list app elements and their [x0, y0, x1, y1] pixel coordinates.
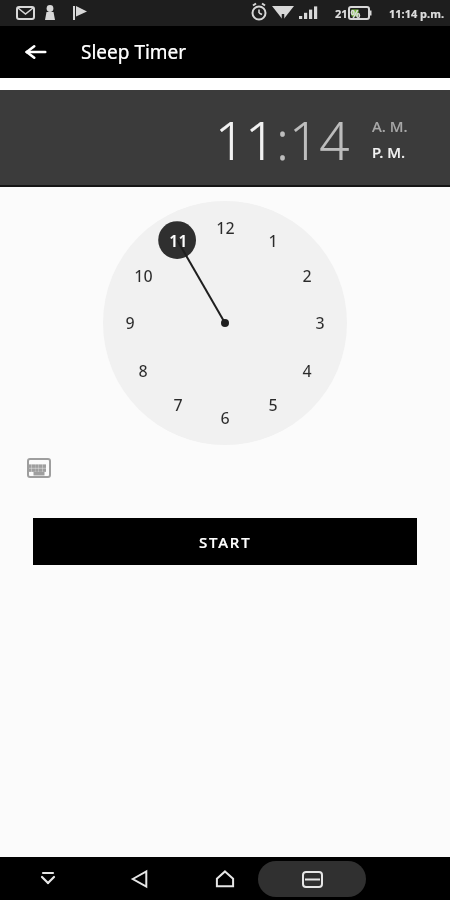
staticText: 1 [268, 230, 278, 252]
staticText: 3 [315, 312, 325, 334]
staticText: 10 [134, 265, 153, 287]
staticText: 21 % [335, 6, 361, 21]
staticText: 9 [125, 312, 135, 334]
button[interactable]: START [33, 518, 417, 565]
staticText: 5 [268, 394, 278, 416]
button[interactable]: A. M. [372, 113, 408, 139]
button[interactable]: 11 [215, 103, 276, 175]
staticText: 6 [220, 407, 230, 429]
staticText: 4 [302, 360, 312, 382]
staticText: 11 [215, 103, 276, 175]
button[interactable]: Hide keyboard [28, 859, 68, 899]
staticText: Sleep Timer [81, 39, 187, 65]
staticText: START [199, 532, 252, 552]
staticText: A. M. [372, 116, 408, 136]
button[interactable]: Recent apps [258, 861, 366, 897]
button[interactable]: Back [120, 859, 160, 899]
staticText: 12 [216, 217, 235, 239]
staticText: : [276, 103, 289, 175]
staticText: P. M. [372, 142, 406, 162]
button[interactable]: Home [205, 859, 245, 899]
staticText: 7 [173, 394, 183, 416]
staticText: 11 [169, 230, 188, 252]
button[interactable]: Navigate up [14, 30, 58, 74]
staticText: 11:14 p.m. [389, 6, 444, 21]
button[interactable]: 14 [289, 103, 350, 175]
staticText: 2 [302, 265, 312, 287]
staticText: 14 [289, 103, 350, 175]
button[interactable]: P. M. [372, 139, 406, 165]
button[interactable]: Switch to keyboard input [28, 459, 50, 477]
staticText: 8 [138, 360, 148, 382]
button[interactable]: 12 [103, 201, 347, 445]
